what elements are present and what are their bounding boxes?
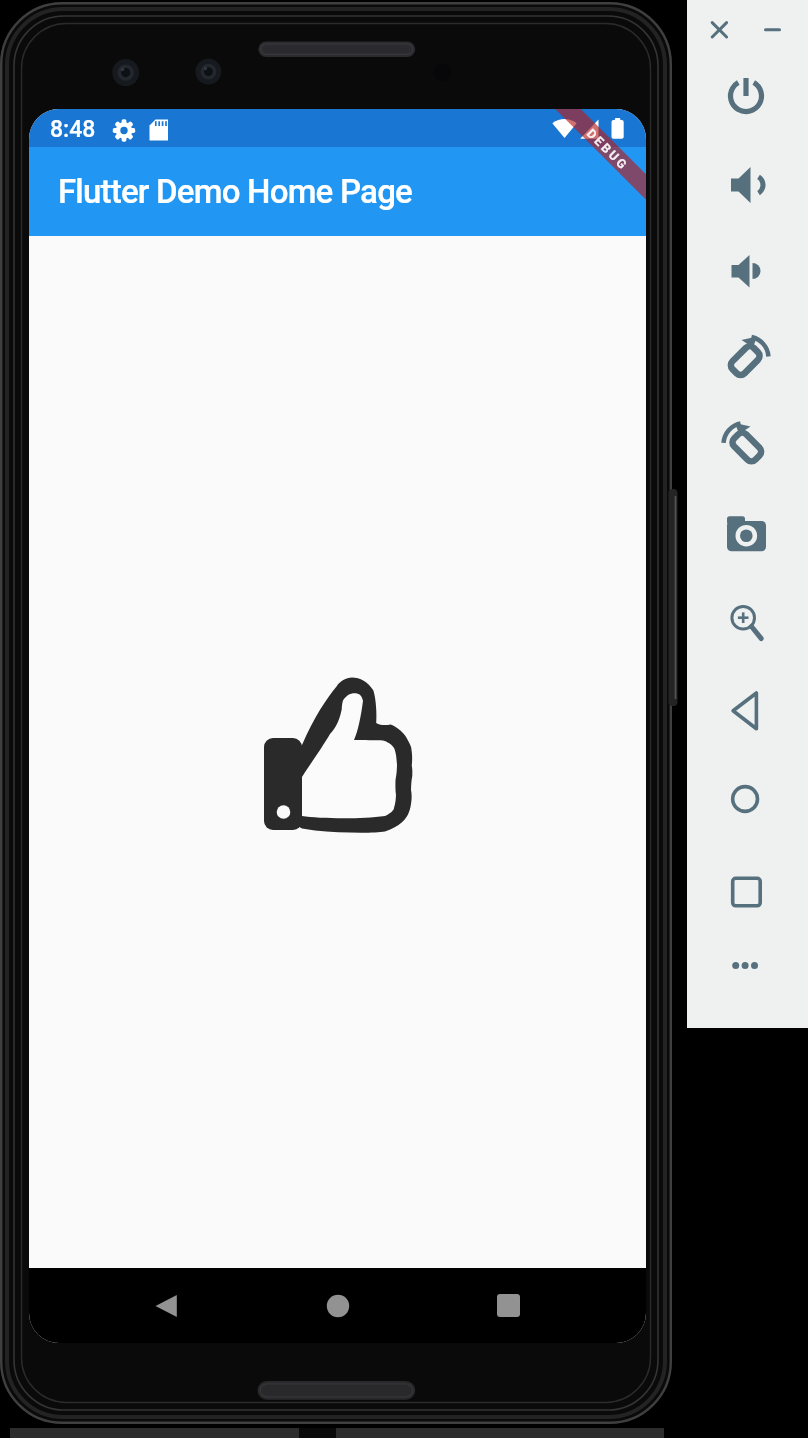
button[interactable]: [722, 596, 770, 644]
button[interactable]: [484, 1282, 532, 1330]
button[interactable]: [314, 1282, 362, 1330]
button[interactable]: [722, 72, 770, 120]
button[interactable]: [722, 687, 770, 735]
button[interactable]: [722, 942, 770, 990]
button[interactable]: [142, 1282, 190, 1330]
button[interactable]: [722, 775, 770, 823]
button[interactable]: [701, 12, 737, 48]
button[interactable]: [722, 247, 770, 295]
button[interactable]: [722, 336, 770, 384]
staticText: DEBUG: [584, 126, 632, 174]
button[interactable]: [722, 423, 770, 471]
button[interactable]: [722, 161, 770, 209]
button[interactable]: [754, 12, 790, 48]
button[interactable]: [722, 511, 770, 559]
staticText: Flutter Demo Home Page: [58, 172, 412, 211]
staticText: 8:48: [50, 116, 96, 143]
button[interactable]: [722, 868, 770, 916]
